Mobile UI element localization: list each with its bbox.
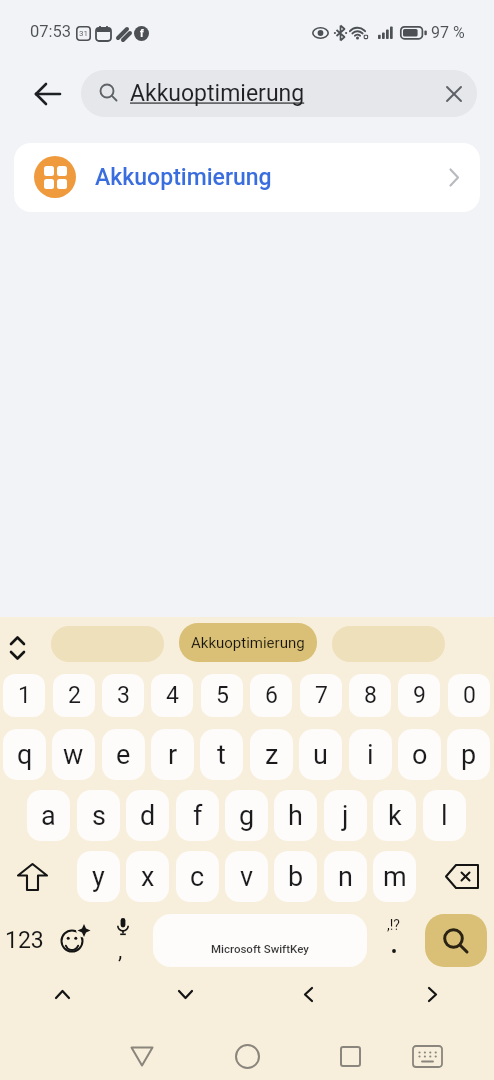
button[interactable]: s — [77, 790, 120, 841]
button[interactable]: Akkuoptimierung — [14, 143, 480, 212]
staticText: w — [63, 739, 84, 771]
button[interactable]: 4 — [151, 674, 193, 717]
staticText: b — [288, 861, 304, 893]
staticText: 2 — [68, 682, 81, 709]
staticText: f — [193, 800, 203, 832]
button[interactable]: c — [176, 851, 219, 902]
button[interactable]: Akkuoptimierung — [81, 70, 477, 117]
button[interactable] — [4, 634, 30, 662]
button[interactable]: y — [77, 851, 120, 902]
staticText: v — [240, 861, 254, 893]
button[interactable]: 5 — [201, 674, 243, 717]
staticText: 3 — [117, 682, 130, 709]
staticText: x — [141, 861, 155, 893]
button[interactable]: Akkuoptimierung — [179, 623, 317, 662]
staticText: 07:53 — [30, 22, 72, 41]
button[interactable]: 2 — [53, 674, 95, 717]
button[interactable] — [438, 851, 486, 902]
staticText: 6 — [265, 682, 278, 709]
button[interactable]: u — [299, 729, 342, 780]
staticText: 0 — [463, 682, 476, 709]
staticText: l — [441, 800, 448, 832]
button[interactable] — [28, 74, 68, 114]
staticText: p — [461, 739, 477, 771]
button[interactable]: a — [27, 790, 70, 841]
button[interactable]: 123 — [2, 914, 46, 967]
button[interactable]: p — [447, 729, 490, 780]
staticText: t — [217, 739, 226, 771]
button[interactable]: 7 — [300, 674, 342, 717]
button[interactable]: f — [176, 790, 219, 841]
button[interactable]: g — [225, 790, 268, 841]
button[interactable]: w — [52, 729, 95, 780]
button[interactable]: z — [250, 729, 293, 780]
button[interactable] — [161, 979, 209, 1009]
staticText: 9 — [413, 682, 426, 709]
button[interactable] — [433, 73, 474, 114]
button[interactable]: m — [373, 851, 416, 902]
staticText: g — [239, 800, 255, 832]
button[interactable]: b — [274, 851, 317, 902]
button[interactable]: q — [3, 729, 46, 780]
button[interactable]: 0 — [448, 674, 490, 717]
staticText: q — [17, 739, 33, 771]
button[interactable] — [326, 1035, 374, 1077]
button[interactable]: l — [423, 790, 466, 841]
staticText: Akkuoptimierung — [191, 634, 305, 652]
button[interactable]: v — [225, 851, 268, 902]
button[interactable] — [408, 979, 456, 1009]
button[interactable]: , — [103, 914, 143, 967]
button[interactable]: Microsoft SwiftKey — [153, 914, 367, 967]
staticText: n — [338, 861, 353, 893]
staticText: 8 — [364, 682, 377, 709]
staticText: c — [190, 861, 205, 893]
staticText: e — [116, 739, 131, 771]
staticText: i — [367, 739, 374, 771]
button[interactable]: 8 — [349, 674, 391, 717]
staticText: ,!? — [387, 917, 400, 933]
staticText: a — [41, 800, 56, 832]
staticText: y — [92, 861, 105, 893]
staticText: 1 — [18, 682, 31, 709]
button[interactable]: k — [373, 790, 416, 841]
staticText: 4 — [166, 682, 179, 709]
button[interactable] — [10, 851, 54, 902]
button[interactable]: h — [274, 790, 317, 841]
button[interactable]: t — [200, 729, 243, 780]
button[interactable] — [118, 1035, 166, 1077]
button[interactable]: 9 — [398, 674, 440, 717]
staticText: z — [265, 739, 279, 771]
staticText: 7 — [315, 682, 328, 709]
staticText: h — [288, 800, 303, 832]
staticText: Akkuoptimierung — [95, 164, 272, 191]
button[interactable] — [38, 979, 86, 1009]
staticText: d — [140, 800, 156, 832]
button[interactable]: i — [349, 729, 392, 780]
staticText: 123 — [5, 927, 44, 954]
button[interactable]: j — [324, 790, 367, 841]
staticText: Akkuoptimierung — [130, 80, 305, 107]
staticText: , — [118, 938, 123, 964]
button[interactable]: r — [151, 729, 194, 780]
button[interactable] — [425, 914, 487, 967]
button[interactable] — [403, 1035, 451, 1077]
button[interactable]: x — [126, 851, 169, 902]
staticText: 31 — [79, 29, 88, 38]
button[interactable]: n — [324, 851, 367, 902]
staticText: f — [140, 28, 144, 40]
button[interactable] — [332, 626, 445, 662]
button[interactable] — [51, 626, 164, 662]
button[interactable]: 3 — [102, 674, 144, 717]
button[interactable]: o — [398, 729, 441, 780]
staticText: 97 % — [431, 23, 465, 42]
button[interactable]: ,!? — [378, 914, 418, 967]
button[interactable]: e — [102, 729, 145, 780]
button[interactable] — [223, 1035, 271, 1077]
staticText: j — [342, 800, 349, 832]
button[interactable]: 6 — [250, 674, 292, 717]
button[interactable] — [284, 979, 332, 1009]
staticText: o — [412, 739, 428, 771]
button[interactable]: d — [126, 790, 169, 841]
button[interactable]: 1 — [3, 674, 45, 717]
button[interactable] — [54, 914, 98, 967]
